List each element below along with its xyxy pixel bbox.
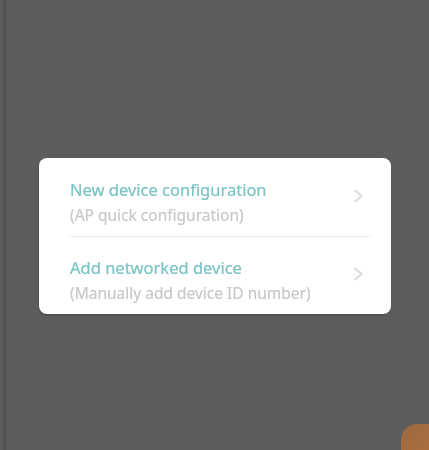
other: Add networked device (343, 259, 373, 289)
button[interactable]: Add networked device (39, 237, 391, 314)
other: New device configuration (343, 181, 373, 211)
staticText: New device configuration (70, 178, 267, 200)
button[interactable]: New device configuration (39, 158, 391, 236)
staticText: (Manually add device ID number) (70, 282, 311, 303)
staticText: (AP quick configuration) (70, 204, 244, 225)
staticText: Add networked device (70, 256, 242, 278)
